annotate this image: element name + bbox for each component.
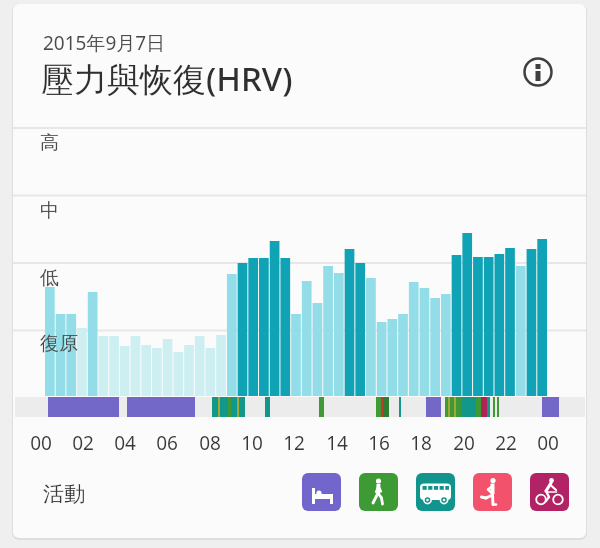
- staticText: 壓力與恢復(HRV): [41, 56, 293, 101]
- button[interactable]: [530, 473, 569, 511]
- staticText: 12: [283, 430, 305, 456]
- staticText: 02: [72, 430, 94, 456]
- staticText: 00: [30, 430, 52, 456]
- button[interactable]: [473, 473, 512, 511]
- button[interactable]: [302, 473, 341, 511]
- staticText: 高: [40, 131, 59, 155]
- staticText: 10: [241, 430, 263, 456]
- staticText: 04: [114, 430, 136, 456]
- staticText: 06: [156, 430, 178, 456]
- staticText: 16: [368, 430, 390, 456]
- staticText: 14: [326, 430, 348, 456]
- staticText: 2015年9月7日: [43, 30, 166, 56]
- staticText: 活動: [43, 481, 85, 507]
- staticText: 中: [40, 199, 59, 223]
- staticText: 00: [537, 430, 559, 456]
- staticText: 18: [410, 430, 432, 456]
- staticText: 復原: [40, 332, 78, 356]
- button[interactable]: [359, 473, 398, 511]
- staticText: 20: [453, 430, 475, 456]
- button[interactable]: [416, 473, 455, 511]
- staticText: 08: [199, 430, 221, 456]
- staticText: 22: [495, 430, 517, 456]
- staticText: 低: [40, 266, 59, 290]
